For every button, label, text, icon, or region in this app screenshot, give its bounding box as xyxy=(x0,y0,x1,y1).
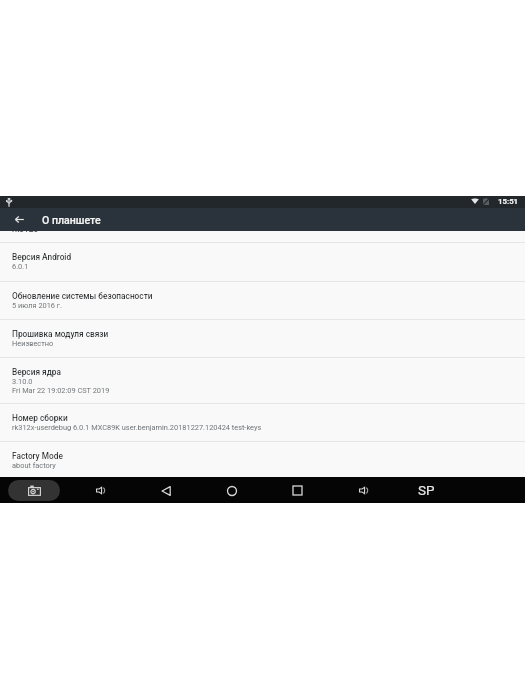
button[interactable]: Back xyxy=(153,478,179,503)
button[interactable]: Обновление системы безопасности xyxy=(0,282,525,319)
staticText: about factory xyxy=(12,461,56,470)
staticText: 6.0.1 xyxy=(12,262,29,271)
button[interactable]: Volume up xyxy=(350,478,376,503)
staticText: Номер сборки xyxy=(12,413,68,423)
staticText: Обновление системы безопасности xyxy=(12,291,153,301)
button[interactable]: SP xyxy=(406,477,446,503)
staticText: 5 июля 2016 г. xyxy=(12,301,62,310)
button[interactable]: Screenshot xyxy=(8,480,60,501)
staticText: SP xyxy=(418,482,435,498)
staticText: Неизвестно xyxy=(12,339,54,348)
staticText: Прошивка модуля связи xyxy=(12,329,109,339)
staticText: Factory Mode xyxy=(12,451,63,461)
staticText: Fri Mar 22 19:02:09 CST 2019 xyxy=(12,386,110,395)
button[interactable]: rk3128 xyxy=(0,231,525,242)
staticText: rk312x-userdebug 6.0.1 MXC89K user.benja… xyxy=(12,423,262,432)
button[interactable]: Volume down xyxy=(87,478,113,503)
staticText: 3.10.0 xyxy=(12,377,33,386)
button[interactable]: Back xyxy=(0,208,38,231)
button[interactable]: Версия ядра xyxy=(0,358,525,403)
button[interactable]: Recents xyxy=(284,478,310,503)
staticText: Версия Android xyxy=(12,252,72,262)
staticText: rk3128 xyxy=(12,231,39,234)
button[interactable]: Home xyxy=(219,478,245,503)
button[interactable]: Версия Android xyxy=(0,243,525,281)
button[interactable]: Номер сборки xyxy=(0,404,525,441)
staticText: Версия ядра xyxy=(12,367,61,377)
staticText: О планшете xyxy=(42,214,101,226)
staticText: 15:51 xyxy=(498,197,519,206)
button[interactable]: Прошивка модуля связи xyxy=(0,320,525,357)
button[interactable]: Factory Mode xyxy=(0,442,525,477)
